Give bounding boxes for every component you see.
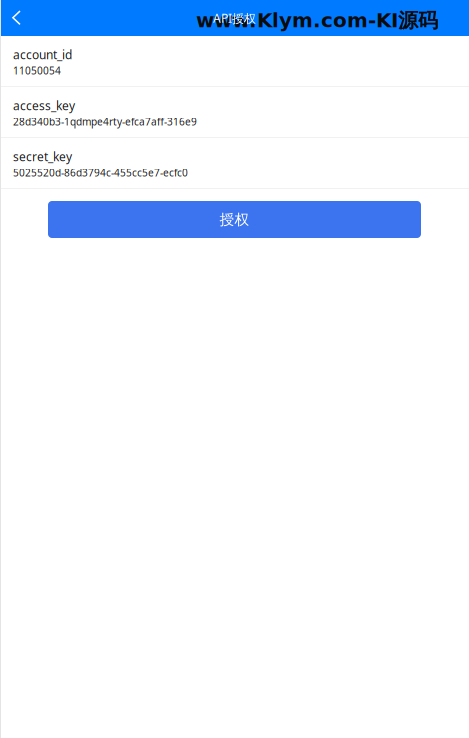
staticText: account_id: [13, 46, 72, 63]
staticText: secret_key: [13, 148, 72, 165]
staticText: 5025520d-86d3794c-455cc5e7-ecfc0: [13, 166, 188, 180]
staticText: www.Klym.com-KI源码: [196, 8, 438, 33]
button[interactable]: 授权: [48, 201, 421, 238]
staticText: API授权: [213, 10, 256, 26]
staticText: access_key: [13, 97, 75, 114]
button[interactable]: Back: [0, 0, 33, 36]
staticText: 28d340b3-1qdmpe4rty-efca7aff-316e9: [13, 115, 197, 129]
staticText: 授权: [219, 210, 249, 229]
staticText: 11050054: [13, 64, 61, 78]
